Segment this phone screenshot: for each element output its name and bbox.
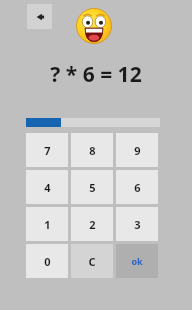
button[interactable]: ok [116, 244, 158, 278]
button[interactable]: 0 [26, 244, 68, 278]
button[interactable]: C [71, 244, 113, 278]
button[interactable]: 6 [116, 170, 158, 204]
button[interactable]: Back [27, 4, 52, 29]
staticText: 4 [44, 180, 51, 195]
staticText: ? * 6 = 12 [50, 60, 142, 89]
staticText: 5 [89, 180, 96, 195]
staticText: 7 [44, 143, 51, 158]
button[interactable]: 8 [71, 133, 113, 167]
button[interactable]: 5 [71, 170, 113, 204]
staticText: ok [131, 255, 143, 267]
staticText: 3 [134, 217, 141, 232]
button[interactable]: 2 [71, 207, 113, 241]
staticText: C [88, 254, 96, 269]
staticText: 6 [134, 180, 141, 195]
button[interactable]: 4 [26, 170, 68, 204]
staticText: 8 [89, 143, 96, 158]
staticText: 1 [44, 217, 51, 232]
staticText: 2 [89, 217, 96, 232]
button[interactable]: 1 [26, 207, 68, 241]
button[interactable]: 7 [26, 133, 68, 167]
button[interactable]: 9 [116, 133, 158, 167]
staticText: 9 [134, 143, 141, 158]
button[interactable]: 3 [116, 207, 158, 241]
staticText: 0 [44, 254, 51, 269]
